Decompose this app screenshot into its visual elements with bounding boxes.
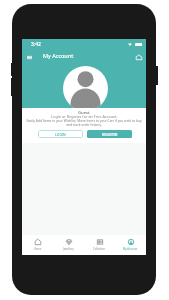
button[interactable]: REGISTER	[87, 130, 132, 138]
staticText: LOGIN	[55, 132, 66, 137]
staticText: Guest	[78, 110, 90, 116]
button[interactable]: Open navigation menu	[24, 52, 35, 63]
button[interactable]: Collection	[84, 235, 115, 255]
staticText: 3:42	[31, 41, 41, 48]
staticText: REGISTER	[102, 132, 118, 137]
staticText: Collection	[93, 247, 106, 251]
button[interactable]: LOGIN	[38, 130, 83, 138]
button[interactable]: My Account	[115, 235, 146, 255]
staticText: My Account	[123, 247, 138, 251]
staticText: Login or Register for an Free Account.	[51, 114, 118, 119]
button[interactable]: Jewellery	[53, 235, 84, 255]
button[interactable]: Home	[133, 52, 144, 63]
staticText: Easily Add Items in your Wishlist, Move …	[26, 119, 142, 127]
staticText: My Account	[43, 52, 74, 59]
button[interactable]: Home	[22, 235, 53, 255]
staticText: Jewellery	[63, 247, 74, 251]
staticText: Home	[34, 247, 42, 251]
